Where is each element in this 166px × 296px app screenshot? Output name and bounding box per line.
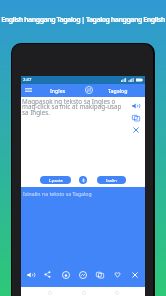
- button[interactable]: Copy: [94, 269, 105, 280]
- staticText: Isinalin na teksto sa Tagalog: [23, 190, 92, 197]
- button[interactable]: I-paste: [40, 176, 71, 184]
- button[interactable]: Close: [129, 269, 140, 280]
- button[interactable]: Copy: [129, 111, 143, 125]
- button[interactable]: Tagalog: [102, 84, 134, 97]
- button[interactable]: Listen: [129, 99, 143, 113]
- button[interactable]: Microphone: [79, 176, 87, 184]
- button[interactable]: Messenger: [77, 269, 88, 280]
- button[interactable]: Back: [45, 288, 54, 296]
- staticText: Isalin: [106, 177, 117, 183]
- staticText: Ingles: [50, 87, 66, 94]
- button[interactable]: Speak: [25, 269, 36, 280]
- button[interactable]: Home: [79, 288, 88, 296]
- button[interactable]: Favorite: [112, 269, 123, 280]
- button[interactable]: Isalin: [97, 176, 126, 184]
- staticText: Tagalog: [108, 87, 128, 94]
- button[interactable]: Clear: [129, 123, 143, 137]
- staticText: Magpasok ng teksto sa Ingles o mag-click…: [22, 97, 127, 117]
- staticText: 2:37: [23, 77, 32, 83]
- button[interactable]: Menu: [22, 84, 34, 96]
- button[interactable]: Recents: [112, 288, 121, 296]
- staticText: English hanggang Tagalog | Tagalog hangg…: [0, 15, 166, 25]
- button[interactable]: Swap languages: [83, 84, 95, 96]
- button[interactable]: Share: [42, 269, 53, 280]
- button[interactable]: WhatsApp: [60, 269, 71, 280]
- staticText: I-paste: [49, 177, 63, 183]
- button[interactable]: Ingles: [43, 84, 73, 97]
